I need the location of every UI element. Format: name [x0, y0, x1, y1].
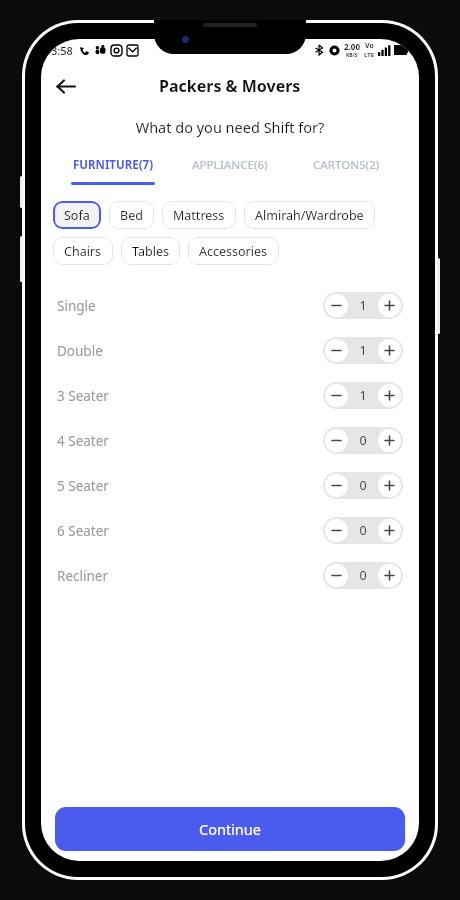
staticText: 0: [350, 432, 376, 449]
staticText: 2.00: [344, 41, 360, 52]
staticText: 4 Seater: [57, 432, 109, 450]
button[interactable]: Increase: [378, 294, 401, 317]
staticText: 1: [350, 387, 376, 404]
button[interactable]: Decrease: [325, 429, 348, 452]
button[interactable]: Mattress: [162, 201, 236, 229]
button[interactable]: Decrease: [325, 339, 348, 362]
staticText: Almirah/Wardrobe: [255, 207, 364, 224]
button[interactable]: Increase: [378, 384, 401, 407]
button[interactable]: Decrease: [325, 519, 348, 542]
staticText: Tables: [132, 243, 169, 260]
staticText: Packers & Movers: [159, 75, 301, 97]
staticText: 3:58: [51, 43, 73, 58]
button[interactable]: Back: [49, 70, 81, 102]
button[interactable]: FURNITURE(7): [55, 157, 171, 185]
staticText: FURNITURE(7): [73, 157, 154, 173]
staticText: Bed: [120, 207, 143, 224]
button[interactable]: Double: [57, 328, 403, 373]
button[interactable]: Increase: [378, 519, 401, 542]
staticText: What do you need Shift for?: [41, 117, 419, 137]
button[interactable]: Decrease: [325, 564, 348, 587]
button[interactable]: Single: [57, 283, 403, 328]
button[interactable]: Decrease: [325, 474, 348, 497]
button[interactable]: Increase: [378, 564, 401, 587]
staticText: LTE: [364, 51, 375, 59]
button[interactable]: APPLIANCE(6): [171, 157, 288, 185]
button[interactable]: Recliner: [57, 553, 403, 598]
staticText: Accessories: [199, 243, 268, 260]
button[interactable]: Chairs: [53, 237, 113, 265]
staticText: KB/S: [346, 52, 358, 59]
button[interactable]: Sofa: [53, 201, 101, 229]
button[interactable]: Continue: [55, 807, 405, 851]
staticText: CARTONS(2): [313, 157, 380, 173]
staticText: Continue: [199, 819, 261, 839]
button[interactable]: CARTONS(2): [288, 157, 405, 185]
button[interactable]: 6 Seater: [57, 508, 403, 553]
staticText: Double: [57, 342, 103, 360]
button[interactable]: Decrease: [325, 384, 348, 407]
staticText: 1: [350, 342, 376, 359]
staticText: Sofa: [64, 207, 90, 224]
button[interactable]: Almirah/Wardrobe: [244, 201, 375, 229]
button[interactable]: Increase: [378, 474, 401, 497]
staticText: Mattress: [173, 207, 225, 224]
staticText: Chairs: [64, 243, 102, 260]
staticText: APPLIANCE(6): [192, 157, 268, 173]
staticText: Recliner: [57, 567, 108, 585]
button[interactable]: 5 Seater: [57, 463, 403, 508]
button[interactable]: 3 Seater: [57, 373, 403, 418]
button[interactable]: Tables: [121, 237, 180, 265]
staticText: 3 Seater: [57, 387, 109, 405]
button[interactable]: Accessories: [188, 237, 279, 265]
button[interactable]: Bed: [109, 201, 154, 229]
staticText: 0: [350, 567, 376, 584]
button[interactable]: Increase: [378, 339, 401, 362]
button[interactable]: Decrease: [325, 294, 348, 317]
staticText: 0: [350, 522, 376, 539]
staticText: 1: [350, 297, 376, 314]
staticText: Single: [57, 297, 96, 315]
staticText: 5 Seater: [57, 477, 109, 495]
staticText: 6 Seater: [57, 522, 109, 540]
button[interactable]: Increase: [378, 429, 401, 452]
staticText: 0: [350, 477, 376, 494]
button[interactable]: 4 Seater: [57, 418, 403, 463]
staticText: Vo: [365, 41, 374, 51]
